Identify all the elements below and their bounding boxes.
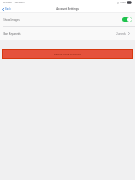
staticText: Show Images [3,18,20,22]
staticText: 2 words [116,32,126,36]
button[interactable]: DELETE YOUR ACCOUNT [3,50,132,58]
staticText: 9:41 PM [3,1,12,4]
staticText: Back [5,7,11,11]
staticText: DELETE YOUR ACCOUNT [54,53,81,56]
button[interactable]: Show Images toggle [122,17,132,22]
button[interactable]: Show Images [0,13,135,26]
staticText: Thu Sep 3 [14,1,25,4]
button[interactable]: Back [0,6,14,12]
staticText: 100% [120,1,126,4]
button[interactable]: Ban Keywords [0,27,135,40]
staticText: Account Settings [56,7,79,11]
staticText: Ban Keywords [3,32,21,36]
